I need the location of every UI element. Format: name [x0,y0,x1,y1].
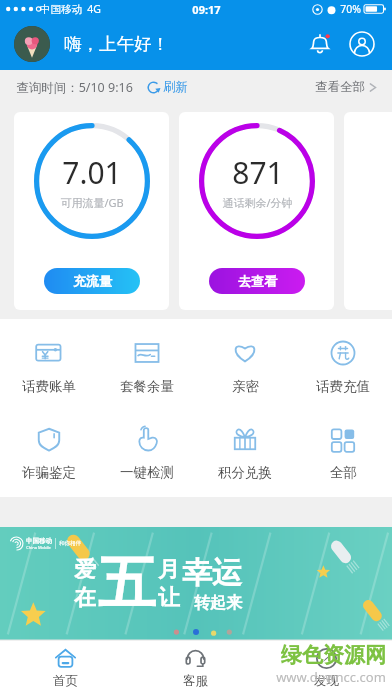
staticText: 客服 [183,673,208,689]
staticText: 去查看 [238,273,277,289]
button[interactable]: Promotion banner [0,527,392,640]
staticText: 让 [158,584,180,612]
staticText: 充流量 [73,273,112,289]
staticText: 首页 [53,673,78,689]
staticText: 爱 [74,556,96,584]
button[interactable]: 充流量 [44,268,140,294]
staticText: 871 [232,152,284,193]
staticText: 嗨，上午好！ [64,33,169,55]
button[interactable]: 7.01 [14,112,169,310]
staticText: 转起来 [194,593,242,613]
staticText: 查询时间：5/10 9:16 [16,79,133,96]
staticText: 发现 [314,673,339,689]
button[interactable]: 套餐余量 [98,331,196,401]
staticText: China Mobile [26,545,51,550]
button[interactable]: 查看全部 [315,79,378,95]
button[interactable]: 话费账单 [0,331,98,401]
staticText: 诈骗鉴定 [22,464,76,481]
staticText: 通话剩余/分钟 [222,195,293,210]
staticText: 套餐余量 [120,378,174,395]
button[interactable]: 去查看 [209,268,305,294]
staticText: 积分兑换 [218,464,272,481]
button[interactable]: 首页 [0,640,130,696]
staticText: 在 [74,584,96,612]
staticText: 全部 [330,464,357,481]
staticText: 7.01 [62,152,122,193]
button[interactable]: 发现 [261,640,392,696]
staticText: 五 [98,547,156,620]
staticText: 和你相伴 [59,540,81,547]
staticText: 中国移动 [40,3,82,16]
staticText: www.downcc.com [276,668,386,686]
staticText: 09:17 [192,2,221,17]
staticText: 4G [87,2,101,16]
staticText: 月 [158,556,180,584]
staticText: 绿色资源网 [281,642,386,668]
staticText: 幸运 [182,554,242,592]
staticText: 70% [340,2,361,16]
staticText: 亲密 [232,378,259,395]
button[interactable]: 亲密 [196,331,294,401]
button[interactable]: 一键检测 [98,417,196,487]
staticText: 话费充值 [316,378,370,395]
staticText: 查看全部 [315,79,365,95]
button[interactable]: 积分兑换 [196,417,294,487]
button[interactable]: 客服 [130,640,261,696]
button[interactable]: 全部 [294,417,392,487]
button[interactable]: 刷新 [147,79,188,95]
staticText: 可用流量/GB [60,195,124,210]
button[interactable]: Avatar [14,26,50,62]
button[interactable]: 诈骗鉴定 [0,417,98,487]
staticText: 一键检测 [120,464,174,481]
button[interactable]: Notifications [304,28,336,60]
staticText: 刷新 [163,79,188,95]
button[interactable]: 871 [179,112,334,310]
button[interactable]: 话费充值 [294,331,392,401]
staticText: 中国移动 [26,537,52,545]
staticText: 话费账单 [22,378,76,395]
button[interactable]: Profile [346,28,378,60]
